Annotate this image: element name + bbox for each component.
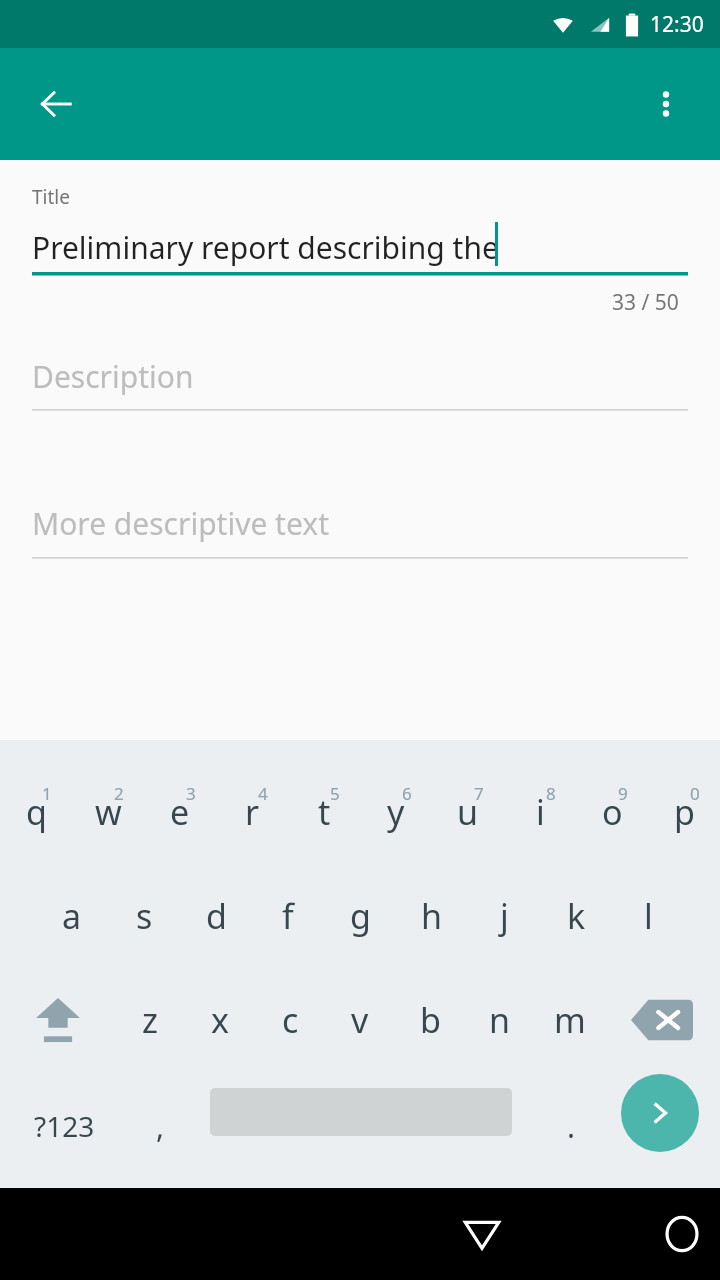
button[interactable]: Home [322, 1188, 720, 1280]
staticText: k [567, 893, 586, 939]
staticText: 12:30 [650, 10, 704, 39]
button[interactable]: b [395, 972, 465, 1068]
staticText: 33 / 50 [612, 288, 679, 317]
button[interactable]: Preliminary report describing the [32, 218, 688, 276]
button[interactable]: 8 [504, 752, 576, 852]
staticText: u [457, 789, 479, 835]
button[interactable]: f [252, 868, 324, 964]
button[interactable]: v [325, 972, 395, 1068]
button[interactable]: Back [20, 68, 92, 140]
staticText: Preliminary report describing the [32, 227, 499, 268]
button[interactable]: More descriptive text [32, 492, 688, 554]
button[interactable]: j [468, 868, 540, 964]
staticText: 8 [546, 782, 556, 805]
button[interactable]: 6 [360, 752, 432, 852]
staticText: 1 [42, 782, 52, 805]
staticText: Description [32, 356, 194, 397]
button[interactable]: , [124, 1078, 196, 1174]
staticText: o [602, 789, 623, 835]
staticText: w [95, 789, 122, 835]
button[interactable]: x [185, 972, 255, 1068]
staticText: 7 [474, 782, 484, 805]
staticText: 3 [186, 782, 196, 805]
staticText: y [387, 789, 405, 835]
staticText: 6 [402, 782, 412, 805]
button[interactable]: ?123 [8, 1078, 120, 1174]
staticText: 0 [690, 782, 700, 805]
staticText: m [554, 997, 586, 1043]
button[interactable]: a [36, 868, 108, 964]
button[interactable]: 0 [648, 752, 720, 852]
staticText: Title [32, 184, 70, 210]
staticText: g [350, 893, 371, 939]
button[interactable]: 4 [216, 752, 288, 852]
button[interactable]: 7 [432, 752, 504, 852]
button[interactable]: Recent apps [522, 1188, 720, 1280]
staticText: e [170, 789, 190, 835]
button[interactable]: Send [621, 1074, 699, 1152]
button[interactable]: l [612, 868, 684, 964]
staticText: 9 [618, 782, 628, 805]
staticText: n [489, 997, 511, 1043]
staticText: q [26, 789, 47, 835]
button[interactable]: d [180, 868, 252, 964]
staticText: z [142, 997, 158, 1043]
button[interactable]: h [396, 868, 468, 964]
button[interactable]: Description [32, 345, 688, 407]
staticText: c [282, 997, 299, 1043]
button[interactable]: k [540, 868, 612, 964]
staticText: 5 [330, 782, 340, 805]
staticText: v [351, 997, 369, 1043]
button[interactable]: . [535, 1078, 607, 1174]
button[interactable]: s [108, 868, 180, 964]
staticText: s [136, 893, 153, 939]
staticText: . [567, 1106, 576, 1147]
staticText: x [211, 997, 229, 1043]
staticText: f [282, 893, 294, 939]
staticText: ?123 [34, 1107, 95, 1145]
button[interactable]: c [255, 972, 325, 1068]
button[interactable]: z [115, 972, 185, 1068]
staticText: , [156, 1106, 165, 1147]
staticText: j [500, 893, 509, 939]
button[interactable]: Shift [8, 972, 108, 1068]
staticText: r [245, 789, 260, 835]
button[interactable]: Back [122, 1188, 720, 1280]
staticText: b [420, 997, 441, 1043]
staticText: h [421, 893, 443, 939]
staticText: t [318, 789, 331, 835]
staticText: l [644, 893, 653, 939]
staticText: i [536, 789, 545, 835]
staticText: 4 [258, 782, 268, 805]
button[interactable]: Backspace [612, 972, 712, 1068]
staticText: d [206, 893, 227, 939]
button[interactable]: m [535, 972, 605, 1068]
button[interactable]: n [465, 972, 535, 1068]
staticText: 2 [114, 782, 124, 805]
button[interactable]: 1 [0, 752, 72, 852]
button[interactable]: 2 [72, 752, 144, 852]
staticText: a [62, 893, 82, 939]
staticText: More descriptive text [32, 503, 329, 544]
staticText: p [674, 789, 695, 835]
button[interactable]: 9 [576, 752, 648, 852]
button[interactable]: 3 [144, 752, 216, 852]
button[interactable]: 5 [288, 752, 360, 852]
button[interactable]: More options [634, 72, 698, 136]
button[interactable]: g [324, 868, 396, 964]
